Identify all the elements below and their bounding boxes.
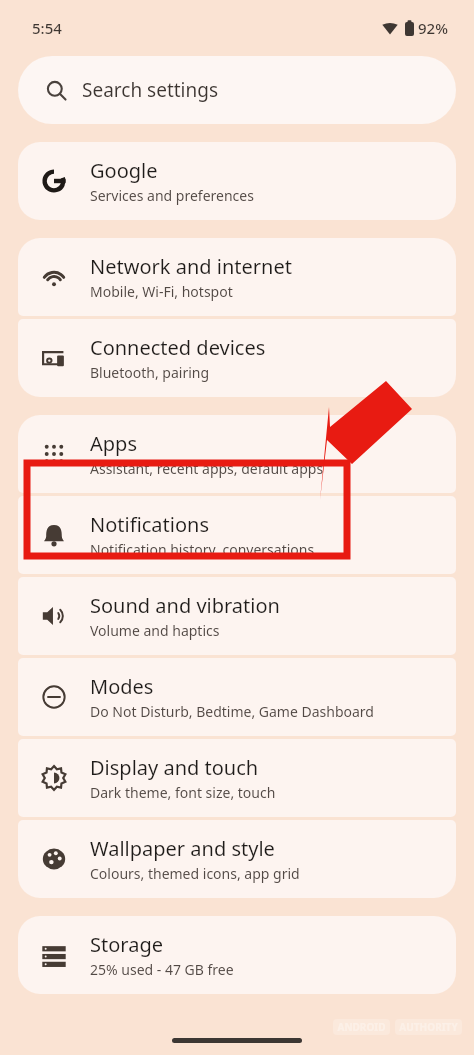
button[interactable]: Apps — [18, 415, 456, 493]
button[interactable]: Connected devices — [18, 319, 456, 397]
staticText: Colours, themed icons, app grid — [90, 864, 300, 883]
button[interactable]: Display and touch — [18, 739, 456, 817]
staticText: Search settings — [82, 77, 219, 103]
staticText: Google — [90, 157, 158, 184]
button[interactable]: Wallpaper and style — [18, 820, 456, 898]
staticText: 92% — [418, 18, 448, 38]
staticText: Bluetooth, pairing — [90, 363, 210, 382]
staticText: Notifications — [90, 511, 209, 538]
staticText: Assistant, recent apps, default apps — [90, 459, 324, 478]
staticText: Display and touch — [90, 754, 259, 781]
staticText: Network and internet — [90, 253, 292, 280]
staticText: Modes — [90, 673, 154, 700]
button[interactable]: Network and internet — [18, 238, 456, 316]
staticText: 5:54 — [32, 18, 62, 38]
staticText: 25% used - 47 GB free — [90, 960, 234, 979]
staticText: AUTHORITY — [399, 1020, 458, 1034]
staticText: Do Not Disturb, Bedtime, Game Dashboard — [90, 702, 374, 721]
staticText: Apps — [90, 430, 137, 457]
staticText: Storage — [90, 931, 163, 958]
button[interactable]: Modes — [18, 658, 456, 736]
button[interactable]: Google — [18, 142, 456, 220]
staticText: Mobile, Wi-Fi, hotspot — [90, 282, 233, 301]
button[interactable]: Notifications — [18, 496, 456, 574]
staticText: Notification history, conversations — [90, 540, 315, 559]
button[interactable]: Sound and vibration — [18, 577, 456, 655]
staticText: Services and preferences — [90, 186, 254, 205]
staticText: Wallpaper and style — [90, 835, 275, 862]
staticText: ANDROID — [337, 1020, 386, 1034]
staticText: Sound and vibration — [90, 592, 280, 619]
button[interactable]: Search settings — [18, 56, 456, 124]
staticText: Volume and haptics — [90, 621, 220, 640]
staticText: Connected devices — [90, 334, 266, 361]
staticText: Dark theme, font size, touch — [90, 783, 276, 802]
button[interactable]: Storage — [18, 916, 456, 994]
